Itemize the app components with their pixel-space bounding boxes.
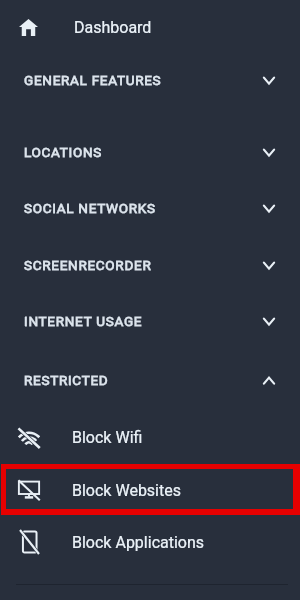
button[interactable]: INTERNET USAGE	[0, 299, 300, 343]
staticText: GENERAL FEATURES	[24, 72, 162, 88]
other: Expand section	[259, 142, 279, 162]
button[interactable]: RESTRICTED	[0, 358, 300, 402]
staticText: Block Applications	[72, 533, 205, 552]
other: Expand section	[259, 255, 279, 275]
other: Expand section	[259, 70, 279, 90]
other: Collapse section	[259, 370, 279, 390]
staticText: SCREENRECORDER	[24, 257, 152, 273]
staticText: RESTRICTED	[24, 372, 109, 388]
staticText: LOCATIONS	[24, 144, 103, 160]
button[interactable]: SCREENRECORDER	[0, 243, 300, 287]
button[interactable]: Block Wifi	[0, 414, 300, 460]
button[interactable]: Dashboard	[0, 0, 300, 54]
button[interactable]: GENERAL FEATURES	[0, 58, 300, 102]
button[interactable]: Block Applications	[0, 519, 300, 565]
button[interactable]: SOCIAL NETWORKS	[0, 186, 300, 230]
staticText: INTERNET USAGE	[24, 313, 143, 329]
button[interactable]: LOCATIONS	[0, 130, 300, 174]
staticText: Dashboard	[74, 18, 152, 37]
staticText: Block Websites	[72, 481, 181, 500]
button[interactable]: Block Websites	[0, 467, 300, 513]
other: Expand section	[259, 198, 279, 218]
staticText: Block Wifi	[72, 428, 143, 447]
other: Expand section	[259, 311, 279, 331]
staticText: SOCIAL NETWORKS	[24, 200, 156, 216]
